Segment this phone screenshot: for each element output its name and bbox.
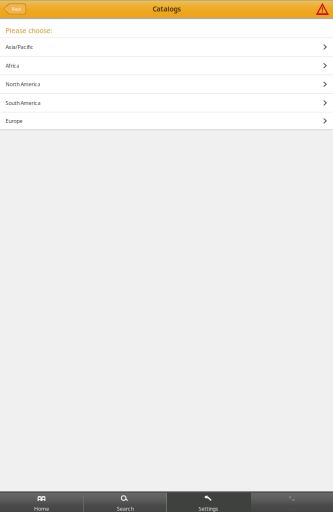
button[interactable]: South America <box>0 94 333 112</box>
button[interactable]: Europe <box>0 113 333 131</box>
staticText: Asia/Pacific <box>5 43 33 51</box>
staticText: North America <box>5 81 40 88</box>
staticText: South America <box>5 99 40 106</box>
button[interactable]: Back <box>3 3 26 14</box>
button[interactable]: North America <box>0 75 333 94</box>
staticText: Please choose: <box>5 26 52 35</box>
staticText: Search <box>117 505 134 512</box>
staticText: Settings <box>198 505 218 512</box>
button[interactable]: Home <box>0 493 83 512</box>
button[interactable]: Warning <box>316 3 329 15</box>
button[interactable]: Africa <box>0 57 333 75</box>
button[interactable]: Contact <box>251 493 333 512</box>
button[interactable]: Settings <box>167 493 250 512</box>
staticText: Home <box>34 505 49 512</box>
staticText: Africa <box>5 62 19 69</box>
button[interactable]: Search <box>84 493 167 512</box>
staticText: Back <box>12 6 21 12</box>
staticText: Europe <box>5 117 22 124</box>
staticText: Catalogs <box>152 4 180 13</box>
button[interactable]: Asia/Pacific <box>0 38 333 57</box>
